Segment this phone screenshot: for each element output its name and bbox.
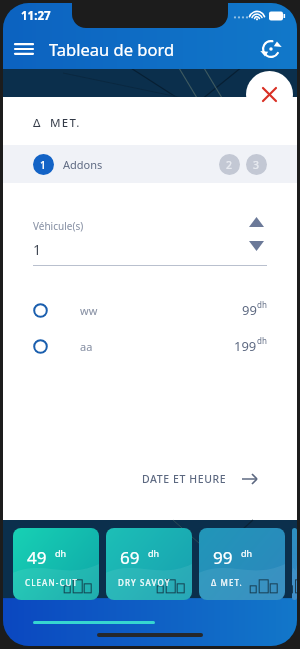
button[interactable]: aa <box>3 332 297 360</box>
staticText: 1 <box>40 158 47 172</box>
staticText: dh <box>55 547 67 559</box>
button[interactable]: 3 <box>246 154 267 175</box>
staticText: aa <box>80 339 93 354</box>
button[interactable]: 99 <box>199 528 285 600</box>
button[interactable]: 49 <box>13 528 99 600</box>
staticText: dh <box>257 335 267 346</box>
staticText: 99 <box>242 301 257 319</box>
staticText: DRY SAVOY <box>118 577 171 588</box>
button[interactable]: Menu <box>3 28 45 69</box>
staticText: Tableau de bord <box>49 38 175 60</box>
button[interactable]: 1 <box>33 154 103 175</box>
staticText: dh <box>241 547 253 559</box>
button[interactable]: DATE ET HEURE <box>136 464 265 494</box>
button[interactable]: Sync <box>249 28 293 69</box>
button[interactable]: ww <box>3 296 297 324</box>
staticText: Addons <box>63 157 103 172</box>
button[interactable]: 69 <box>106 528 192 600</box>
button[interactable]: Close <box>246 71 293 118</box>
staticText: dh <box>257 299 267 310</box>
staticText: 11:27 <box>21 8 51 24</box>
button[interactable]: Decrease <box>245 235 267 257</box>
button[interactable]: Increase <box>245 211 267 233</box>
staticText: 69 <box>120 546 140 569</box>
staticText: ww <box>80 303 98 318</box>
staticText: 1 <box>33 240 42 259</box>
staticText: DATE ET HEURE <box>142 472 227 486</box>
button[interactable]: 2 <box>219 154 240 175</box>
staticText: Véhicule(s) <box>33 219 84 233</box>
button[interactable]: 1 <box>292 528 297 600</box>
staticText: dh <box>148 547 160 559</box>
staticText: 49 <box>27 546 47 569</box>
staticText: 199 <box>234 337 257 355</box>
staticText: Δ MET. <box>33 115 81 131</box>
staticText: Δ MET. <box>211 577 243 588</box>
staticText: CLEAN-CUT <box>25 577 79 588</box>
staticText: 2 <box>226 158 233 172</box>
staticText: 3 <box>253 158 260 172</box>
staticText: 99 <box>213 546 233 569</box>
